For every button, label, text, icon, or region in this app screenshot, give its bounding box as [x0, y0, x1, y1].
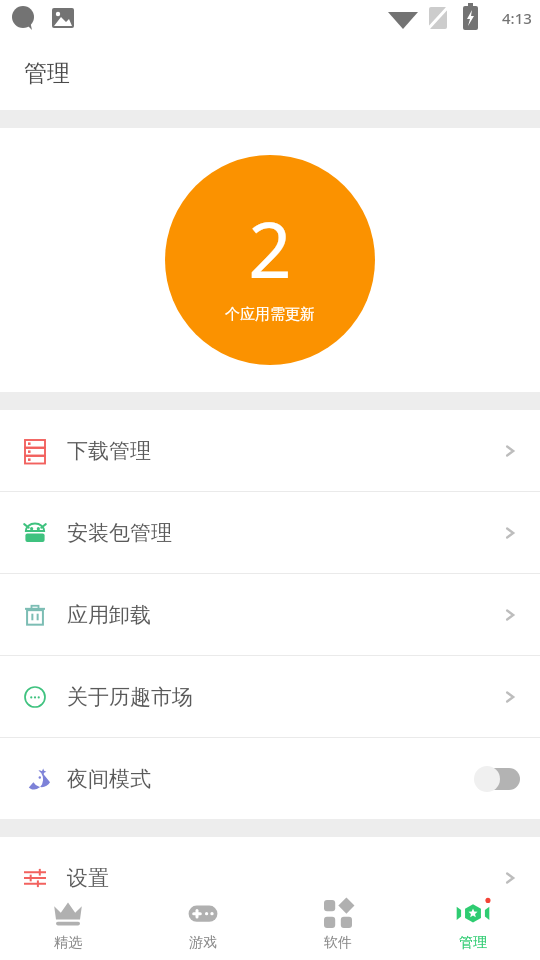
button[interactable]: 2: [165, 155, 375, 365]
staticText: 软件: [324, 934, 352, 952]
button[interactable]: 关于历趣市场: [0, 656, 540, 737]
staticText: 管理: [459, 934, 487, 952]
staticText: 夜间模式: [67, 766, 151, 792]
button[interactable]: 管理: [405, 888, 540, 960]
staticText: 2: [248, 197, 292, 301]
staticText: 安装包管理: [67, 520, 172, 546]
staticText: 个应用需更新: [225, 305, 315, 324]
button[interactable]: 游戏: [135, 888, 270, 960]
button[interactable]: 应用卸载: [0, 574, 540, 655]
staticText: 下载管理: [67, 438, 151, 464]
button[interactable]: 夜间模式开关: [474, 766, 520, 792]
staticText: 4:13: [502, 8, 532, 28]
button[interactable]: 夜间模式: [0, 738, 540, 819]
staticText: 管理: [24, 59, 70, 88]
button[interactable]: 软件: [270, 888, 405, 960]
button[interactable]: 安装包管理: [0, 492, 540, 573]
button[interactable]: 精选: [0, 888, 135, 960]
staticText: 应用卸载: [67, 602, 151, 628]
staticText: 设置: [67, 865, 109, 891]
staticText: 精选: [54, 934, 82, 952]
staticText: 游戏: [189, 934, 217, 952]
button[interactable]: 下载管理: [0, 410, 540, 491]
staticText: 关于历趣市场: [67, 684, 193, 710]
button[interactable]: 设置: [0, 837, 540, 918]
